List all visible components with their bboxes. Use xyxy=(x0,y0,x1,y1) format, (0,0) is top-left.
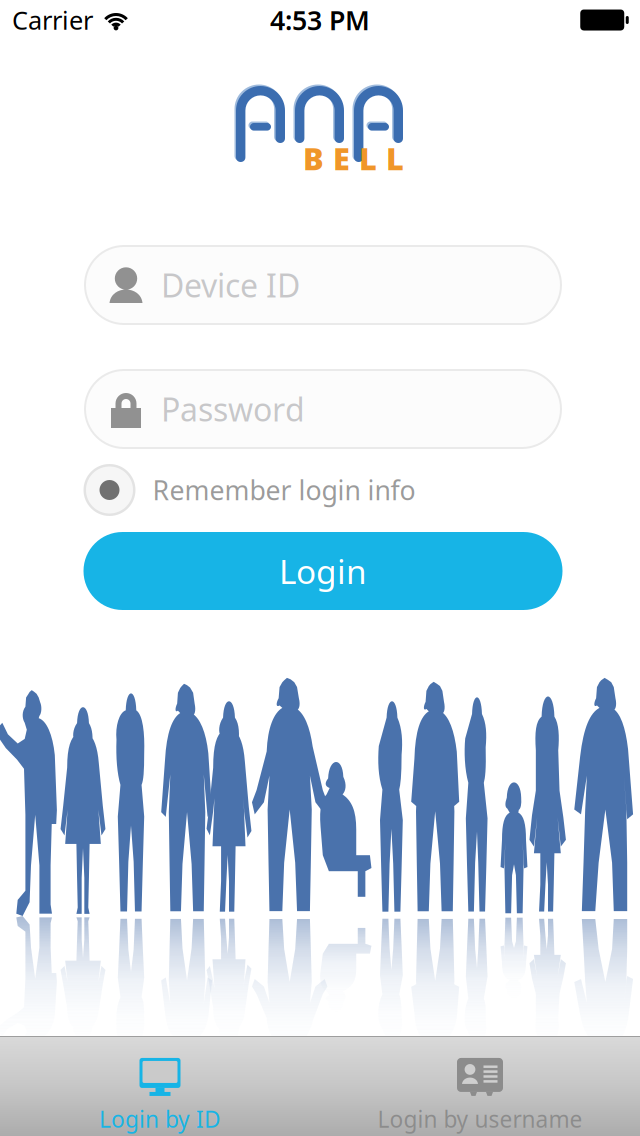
button[interactable]: Login by username xyxy=(320,1037,640,1136)
staticText: L xyxy=(386,138,404,179)
button[interactable]: Login by ID xyxy=(0,1037,320,1136)
staticText: Login by username xyxy=(377,1104,582,1134)
button[interactable]: Remember login info xyxy=(83,464,415,516)
staticText: Device ID xyxy=(161,264,300,306)
staticText: Password xyxy=(161,388,305,430)
staticText: Remember login info xyxy=(152,472,415,508)
staticText: Carrier xyxy=(12,3,93,37)
staticText: B xyxy=(303,138,324,179)
staticText: L xyxy=(359,138,377,179)
staticText: Login by ID xyxy=(99,1104,221,1134)
staticText: 4:53 PM xyxy=(270,2,370,38)
staticText: E xyxy=(333,138,350,179)
button[interactable]: Login xyxy=(83,532,562,610)
staticText: Login xyxy=(279,549,367,593)
